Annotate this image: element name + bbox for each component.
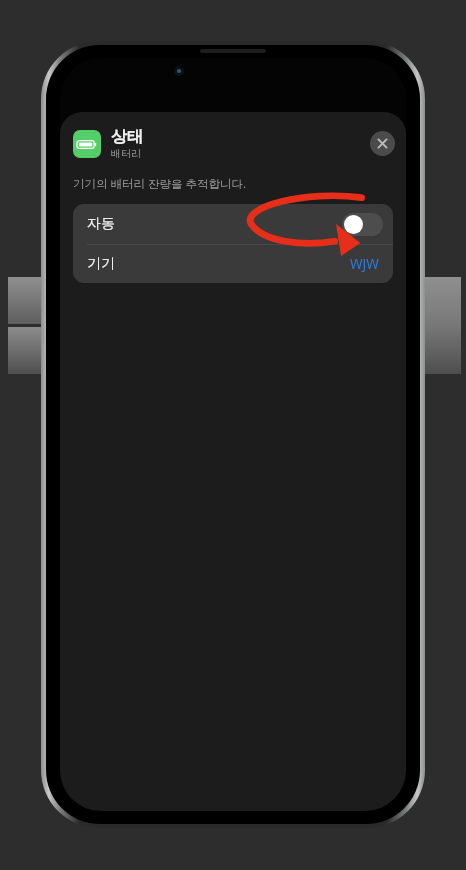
staticText: 상태 — [111, 127, 143, 147]
button[interactable]: 자동 — [73, 204, 393, 244]
staticText: 기기 — [87, 255, 350, 273]
staticText: 기기의 배터리 잔량을 추적합니다. — [73, 176, 247, 192]
button[interactable]: Close — [370, 131, 395, 156]
staticText: WJW — [350, 255, 379, 273]
staticText: 자동 — [87, 215, 342, 233]
staticText: 배터리 — [111, 147, 141, 160]
button[interactable]: 기기 — [73, 245, 393, 283]
button[interactable]: Automatic toggle — [342, 213, 383, 236]
